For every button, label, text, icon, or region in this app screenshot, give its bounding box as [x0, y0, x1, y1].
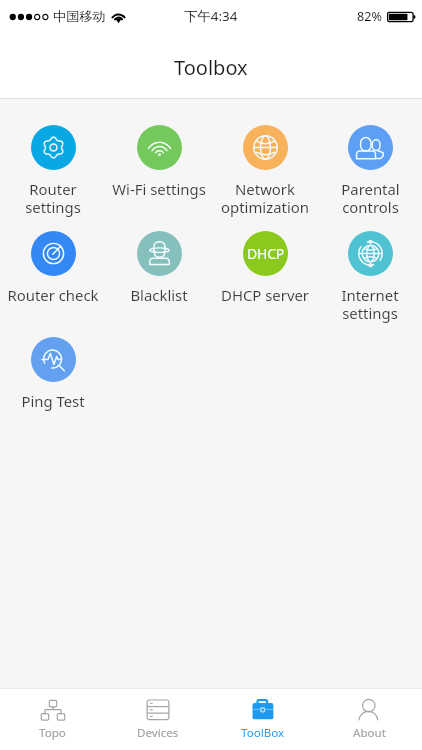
staticText: DHCP	[247, 244, 285, 263]
staticText: Wi-Fi settings	[112, 179, 206, 199]
button[interactable]: Blacklist	[106, 224, 212, 330]
button[interactable]: Ping Test	[0, 330, 106, 436]
button[interactable]: Network optimization	[212, 118, 318, 224]
button[interactable]: Internet settings	[318, 224, 422, 330]
button[interactable]: Router settings	[0, 118, 106, 224]
staticText: Parental controls	[341, 179, 400, 217]
button[interactable]: About	[316, 689, 422, 750]
staticText: Topo	[39, 725, 66, 741]
staticText: Toolbox	[174, 54, 248, 81]
staticText: 中国移动	[53, 8, 106, 25]
button[interactable]: DHCP	[212, 224, 318, 330]
staticText: ToolBox	[241, 725, 285, 741]
staticText: Ping Test	[21, 391, 85, 411]
staticText: 82%	[357, 8, 382, 25]
staticText: Router check	[7, 285, 99, 305]
staticText: Network optimization	[221, 179, 309, 217]
button[interactable]: Wi-Fi settings	[106, 118, 212, 224]
staticText: 下午4:34	[184, 7, 238, 25]
button[interactable]: Devices	[105, 689, 210, 750]
button[interactable]: Parental controls	[318, 118, 422, 224]
staticText: Blacklist	[130, 285, 188, 305]
button[interactable]: ToolBox	[210, 689, 316, 750]
button[interactable]: Router check	[0, 224, 106, 330]
staticText: Devices	[137, 725, 179, 741]
staticText: DHCP server	[221, 285, 309, 305]
staticText: Internet settings	[341, 285, 399, 323]
staticText: About	[353, 725, 386, 741]
button[interactable]: Topo	[0, 689, 105, 750]
staticText: Router settings	[25, 179, 81, 217]
